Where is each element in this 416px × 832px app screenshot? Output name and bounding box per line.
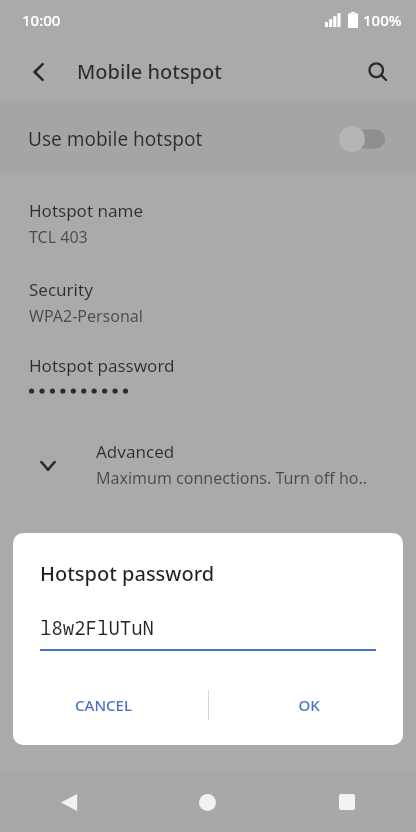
staticText: WPA2-Personal [29, 305, 143, 327]
button[interactable]: Hotspot name [0, 199, 416, 248]
staticText: 10:00 [22, 10, 61, 30]
staticText: Advanced [96, 440, 175, 463]
staticText: Security [29, 278, 93, 301]
staticText: TCL 403 [29, 226, 88, 248]
button[interactable]: Security [0, 278, 416, 327]
button[interactable]: Back [16, 48, 64, 96]
button[interactable]: Advanced [0, 440, 416, 489]
staticText: l8w2FlUTuN [40, 615, 155, 641]
button[interactable]: Home [138, 772, 277, 832]
staticText: Maximum connections. Turn off ho.. [96, 467, 368, 489]
staticText: Hotspot password [40, 560, 215, 587]
button[interactable]: l8w2FlUTuN [40, 615, 376, 651]
staticText: OK [298, 695, 320, 715]
staticText: CANCEL [75, 695, 132, 715]
staticText: Mobile hotspot [77, 58, 222, 85]
staticText: 100% [363, 10, 402, 30]
staticText: Use mobile hotspot [28, 126, 203, 152]
staticText: Hotspot name [29, 199, 143, 222]
button[interactable]: Use mobile hotspot [0, 103, 416, 175]
button[interactable]: Hotspot password [0, 354, 416, 396]
button[interactable]: Search [354, 48, 402, 96]
button[interactable]: CANCEL [63, 687, 144, 723]
button[interactable]: OK [286, 687, 332, 723]
button[interactable]: Back [0, 772, 138, 832]
button[interactable]: Recent apps [277, 772, 416, 832]
staticText: Hotspot password [29, 354, 175, 377]
